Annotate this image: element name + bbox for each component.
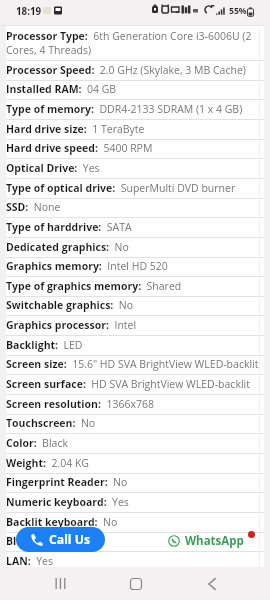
staticText: Graphics processor: Intel [6,318,264,332]
other: Call [30,533,43,546]
button[interactable]: Screen surface: HD SVA BrightView WLED-b… [6,375,264,395]
button[interactable]: Back [196,567,228,600]
staticText: Type of optical drive: SuperMulti DVD bu… [6,181,264,195]
staticText: Optical Drive: Yes [6,161,264,175]
button[interactable]: Color: Black [6,434,264,454]
staticText: Weight: 2.04 KG [6,456,264,470]
button[interactable]: Weight: 2.04 KG [6,454,264,474]
staticText: Dedicated graphics: No [6,240,264,254]
button[interactable]: Type of harddrive: SATA [6,218,264,238]
button[interactable]: LAN: Yes [6,552,264,572]
staticText: Processor Speed: 2.0 GHz (Skylake, 3 MB … [6,63,264,77]
button[interactable]: Hard drive size: 1 TeraByte [6,120,264,140]
staticText: Color: Black [6,436,264,450]
staticText: Hard drive speed: 5400 RPM [6,141,264,155]
staticText: Backlit keyboard: No [6,515,264,529]
button[interactable]: Hard drive speed: 5400 RPM [6,139,264,159]
staticText: Screen size: 15.6" HD SVA BrightView WLE… [6,357,264,371]
staticText: Numeric keyboard: Yes [6,495,264,509]
staticText: Installed RAM: 04 GB [6,82,264,96]
staticText: Hard drive size: 1 TeraByte [6,122,264,136]
staticText: LAN: Yes [6,554,264,568]
staticText: Screen resolution: 1366x768 [6,397,264,411]
button[interactable]: Fingerprint Reader: No [6,473,264,493]
staticText: 18:19 [16,5,42,18]
button[interactable]: SSD: None [6,198,264,218]
button[interactable]: Numeric keyboard: Yes [6,493,264,513]
staticText: Touchscreen: No [6,416,264,430]
button[interactable]: Call [16,527,105,552]
button[interactable]: Type of memory: DDR4-2133 SDRAM (1 x 4 G… [6,100,264,120]
staticText: SSD: None [6,200,264,214]
staticText: Processor Type: 6th Generation Core i3-6… [6,29,264,57]
button[interactable]: Dedicated graphics: No [6,238,264,258]
button[interactable]: Installed RAM: 04 GB [6,80,264,100]
staticText: Type of graphics memory: Shared [6,279,264,293]
button[interactable]: Bluetooth: Yes [6,532,264,552]
button[interactable]: Graphics processor: Intel [6,316,264,336]
button[interactable]: Screen size: 15.6" HD SVA BrightView WLE… [6,355,264,375]
button[interactable]: Touchscreen: No [6,414,264,434]
staticText: Type of memory: DDR4-2133 SDRAM (1 x 4 G… [6,102,264,116]
staticText: Bluetooth: Yes [6,534,264,548]
button[interactable]: Processor Type: 6th Generation Core i3-6… [6,26,264,61]
staticText: Backlight: LED [6,338,264,352]
button[interactable]: Backlight: LED [6,336,264,356]
other: WhatsApp [168,535,180,547]
button[interactable]: Graphics memory: Intel HD 520 [6,257,264,277]
button[interactable]: Optical Drive: Yes [6,159,264,179]
button[interactable]: Screen resolution: 1366x768 [6,395,264,415]
button[interactable]: Switchable graphics: No [6,296,264,316]
staticText: Graphics memory: Intel HD 520 [6,259,264,273]
button[interactable]: WhatsApp [168,532,244,549]
button[interactable]: Processor Speed: 2.0 GHz (Skylake, 3 MB … [6,61,264,81]
button[interactable]: Type of optical drive: SuperMulti DVD bu… [6,179,264,199]
button[interactable]: Type of graphics memory: Shared [6,277,264,297]
staticText: Call Us [49,531,91,548]
staticText: WhatsApp [185,533,244,549]
button[interactable]: Recent apps [44,567,76,600]
staticText: Type of harddrive: SATA [6,220,264,234]
staticText: Screen surface: HD SVA BrightView WLED-b… [6,377,264,391]
button[interactable]: Backlit keyboard: No [6,513,264,533]
staticText: Fingerprint Reader: No [6,475,264,489]
button[interactable]: Home [120,567,152,600]
staticText: Switchable graphics: No [6,298,264,312]
staticText: 55% [229,5,247,17]
